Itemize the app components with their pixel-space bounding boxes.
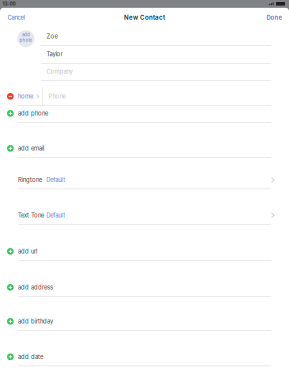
staticText: Company [46,68,72,75]
button[interactable]: Cancel [0,9,58,27]
staticText: add phone [18,110,48,117]
staticText: photo [19,37,32,43]
button[interactable]: add address [0,279,289,296]
staticText: add date [18,353,43,360]
staticText: Cancel [8,14,25,21]
staticText: New Contact [124,14,165,21]
staticText: add url [18,248,37,255]
staticText: Taylor [46,50,62,58]
button[interactable]: add birthday [0,313,289,330]
staticText: Default [46,212,65,219]
button[interactable]: Done [231,9,289,27]
button[interactable]: home [18,93,39,100]
button[interactable]: Add photo [17,30,34,47]
button[interactable]: add date [0,348,289,365]
staticText: add address [18,284,53,291]
button[interactable]: add email [0,140,289,157]
staticText: Text Tone [18,212,44,219]
staticText: 13:00 [3,1,16,7]
staticText: Done [267,14,282,21]
staticText: Ringtone [18,176,42,183]
staticText: Phone [48,93,65,100]
staticText: add birthday [18,318,53,325]
staticText: home [18,93,33,100]
staticText: Default [46,176,65,183]
button[interactable]: Text Tone [0,207,289,224]
staticText: add email [18,145,44,152]
staticText: add [22,32,30,37]
staticText: Zoe [46,33,57,40]
button[interactable]: add url [0,243,289,260]
button[interactable]: add phone [0,105,289,122]
button[interactable]: Ringtone [0,171,289,188]
